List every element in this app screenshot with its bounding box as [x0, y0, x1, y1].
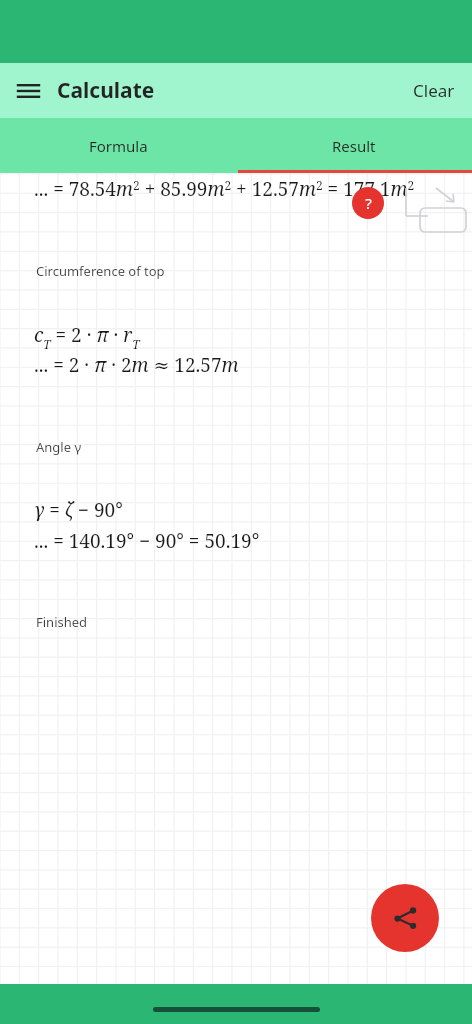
staticText: cT = 2 · π · rT: [34, 322, 140, 352]
staticText: ?: [365, 193, 372, 213]
button[interactable]: Help: [352, 187, 384, 219]
staticText: Formula: [89, 136, 148, 156]
staticText: Angle γ: [36, 438, 82, 456]
button[interactable]: Open navigation menu: [9, 71, 48, 110]
staticText: Result: [332, 136, 376, 156]
button[interactable]: Result: [236, 118, 472, 173]
staticText: ... = 2 · π · 2m ≈ 12.57m: [34, 352, 239, 378]
button[interactable]: Copy result: [402, 186, 450, 226]
staticText: Calculate: [57, 76, 155, 105]
staticText: γ = ζ − 90°: [34, 497, 123, 523]
button[interactable]: Clear: [402, 70, 466, 111]
staticText: Circumference of top: [36, 262, 165, 280]
staticText: Clear: [413, 79, 455, 102]
button[interactable]: Formula: [0, 118, 236, 173]
button[interactable]: Share: [371, 884, 439, 952]
staticText: ... = 78.54m2 + 85.99m2 + 12.57m2 = 177.…: [34, 176, 415, 202]
staticText: ... = 140.19° − 90° = 50.19°: [34, 528, 260, 554]
staticText: Finished: [36, 613, 88, 631]
